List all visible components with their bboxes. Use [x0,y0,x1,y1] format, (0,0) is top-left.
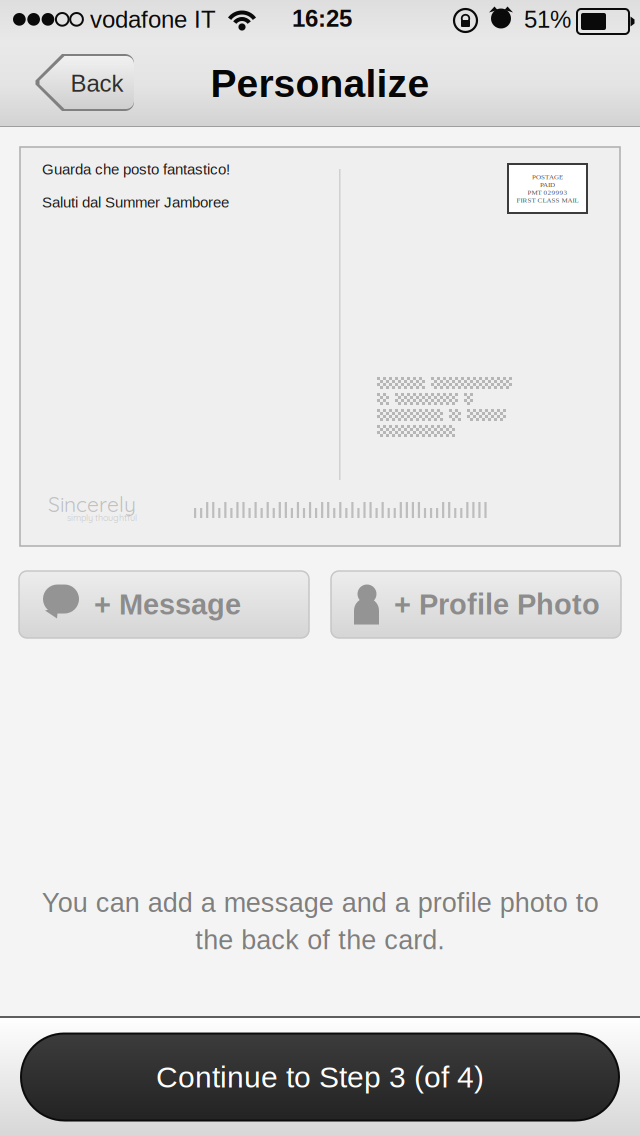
staticText: + Profile Photo [394,588,600,621]
staticText: Personalize [210,62,429,105]
staticText: You can add a message and a profile phot… [41,888,598,955]
staticText: Guarda che posto fantastico! [42,161,230,178]
button[interactable]: + Profile Photo [331,571,621,638]
staticText: Continue to Step 3 (of 4) [156,1060,484,1094]
staticText: PAID [540,181,555,188]
staticText: 51% [524,6,571,33]
staticText: simply thoughtful [67,512,137,523]
staticText: PMT 029993 [527,188,567,196]
staticText: Sincerely [48,491,136,517]
staticText: FIRST CLASS MAIL [516,196,578,204]
staticText: vodafone IT [90,6,216,33]
staticText: + Message [94,588,241,621]
staticText: Saluti dal Summer Jamboree [42,194,229,211]
button[interactable]: Continue to Step 3 (of 4) [21,1033,619,1120]
button[interactable]: Back [34,54,134,111]
staticText: Back [70,70,123,97]
staticText: POSTAGE [532,173,563,181]
staticText: 16:25 [292,5,352,32]
button[interactable]: + Message [19,571,309,638]
